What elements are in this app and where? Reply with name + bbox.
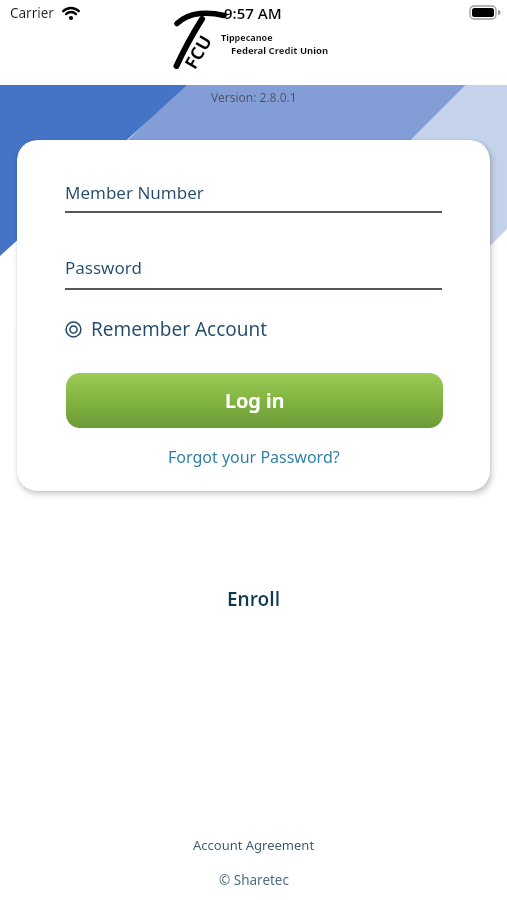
button[interactable]: Remember Account	[65, 316, 268, 342]
button[interactable]: Enroll	[227, 586, 281, 612]
button[interactable]: Log in	[66, 373, 443, 428]
staticText: Password	[65, 256, 142, 279]
staticText: Federal Credit Union	[231, 44, 329, 57]
staticText: © Sharetec	[219, 871, 289, 889]
staticText: Carrier	[10, 4, 54, 22]
staticText: Tippecanoe	[221, 31, 273, 43]
staticText: Version: 2.8.0.1	[211, 89, 297, 105]
staticText: FCU	[178, 30, 216, 72]
staticText: Log in	[225, 387, 285, 414]
staticText: Remember Account	[91, 316, 268, 342]
staticText: 9:57 AM	[224, 3, 282, 23]
staticText: Member Number	[65, 181, 204, 204]
button[interactable]: Account Agreement	[193, 836, 315, 854]
button[interactable]: Forgot your Password?	[168, 446, 340, 468]
